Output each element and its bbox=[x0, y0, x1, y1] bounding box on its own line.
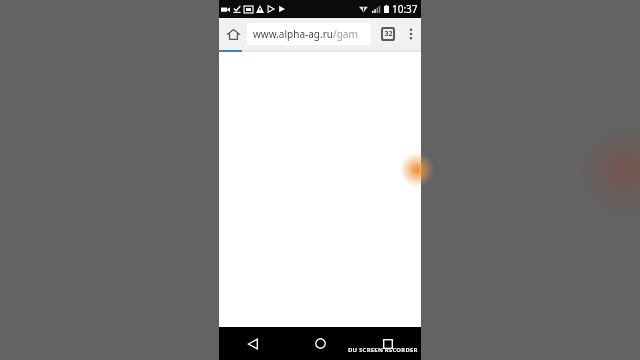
staticText: www.alpha-ag.ru bbox=[253, 27, 333, 41]
staticText: /gam bbox=[333, 27, 358, 41]
button[interactable]: Tabs bbox=[375, 18, 401, 50]
button[interactable]: Home bbox=[219, 18, 247, 50]
staticText: 10:37 bbox=[392, 2, 418, 16]
staticText: DU SCREEN RECORDER bbox=[348, 346, 418, 354]
button[interactable]: Home bbox=[287, 327, 354, 360]
button[interactable]: Recent apps bbox=[354, 327, 421, 360]
button[interactable]: More options bbox=[401, 18, 421, 50]
staticText: 32 bbox=[384, 29, 393, 39]
button[interactable]: www.alpha-ag.ru bbox=[247, 23, 371, 45]
button[interactable]: Back bbox=[219, 327, 287, 360]
